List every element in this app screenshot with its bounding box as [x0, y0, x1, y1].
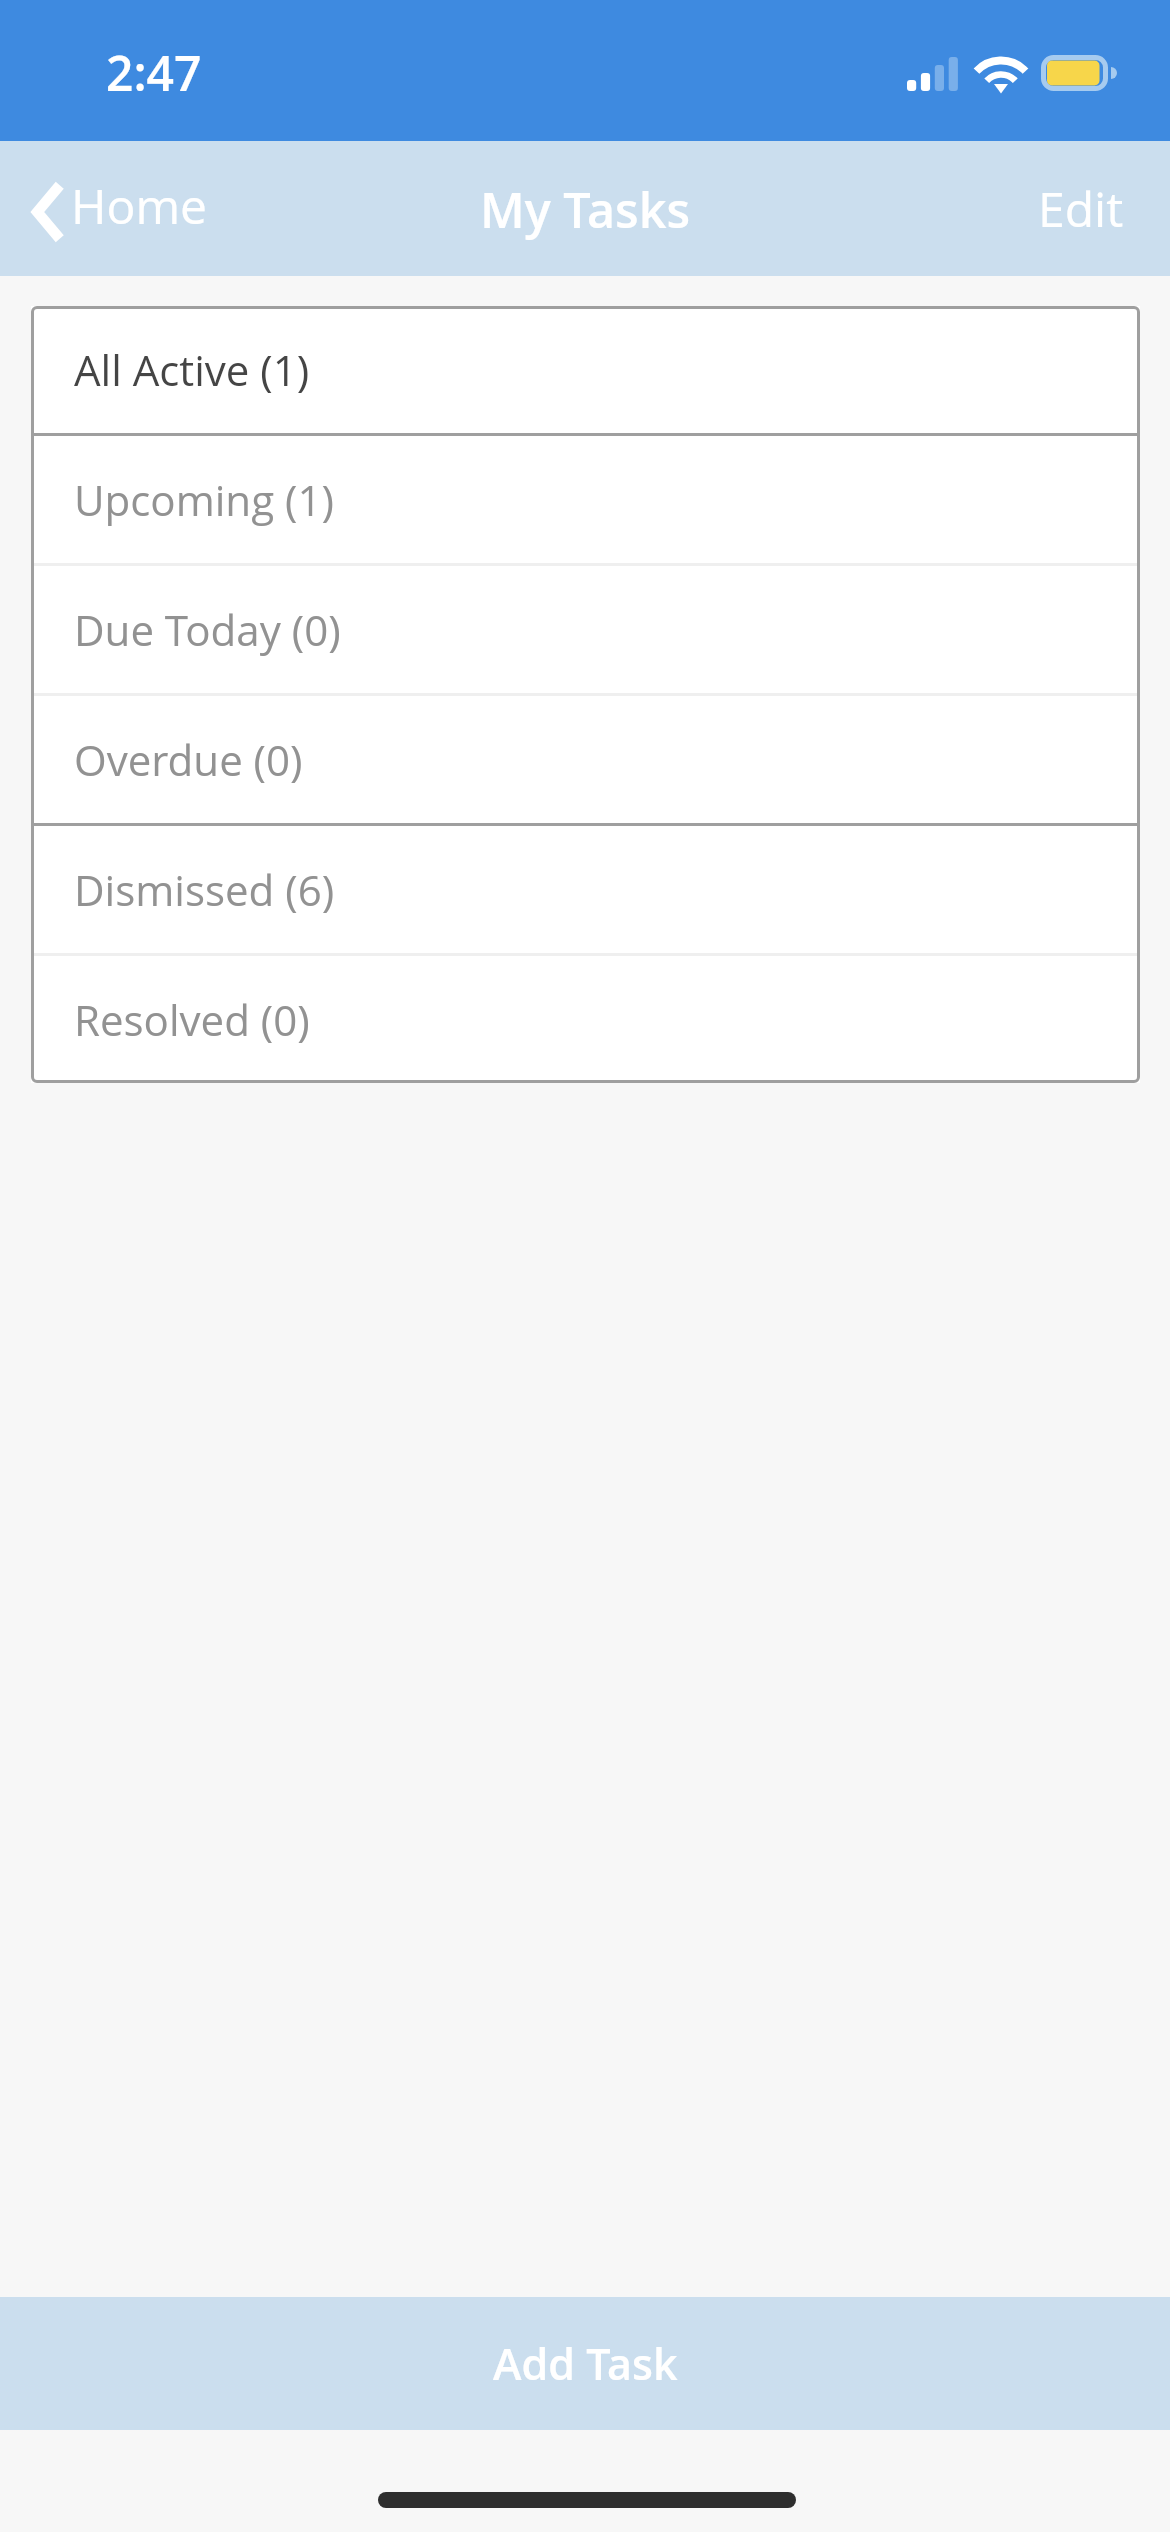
staticText: Add Task — [493, 2334, 678, 2393]
staticText: 2:47 — [106, 40, 202, 105]
button[interactable]: Overdue (0) — [31, 696, 1140, 823]
button[interactable]: All Active (1) — [31, 306, 1140, 433]
staticText: Home — [71, 173, 207, 238]
staticText: All Active (1) — [74, 341, 310, 398]
staticText: Overdue (0) — [74, 731, 303, 788]
button[interactable]: Due Today (0) — [31, 566, 1140, 693]
staticText: My Tasks — [480, 176, 691, 242]
button[interactable]: Dismissed (6) — [31, 826, 1140, 953]
button[interactable]: Edit — [992, 158, 1170, 259]
button[interactable]: Add Task — [0, 2297, 1170, 2430]
staticText: Resolved (0) — [74, 991, 310, 1048]
button[interactable]: Back to Home — [0, 158, 225, 259]
staticText: Upcoming (1) — [74, 471, 334, 528]
staticText: Dismissed (6) — [74, 861, 335, 918]
button[interactable]: Resolved (0) — [31, 956, 1140, 1083]
staticText: Due Today (0) — [74, 601, 341, 658]
button[interactable]: Upcoming (1) — [31, 436, 1140, 563]
